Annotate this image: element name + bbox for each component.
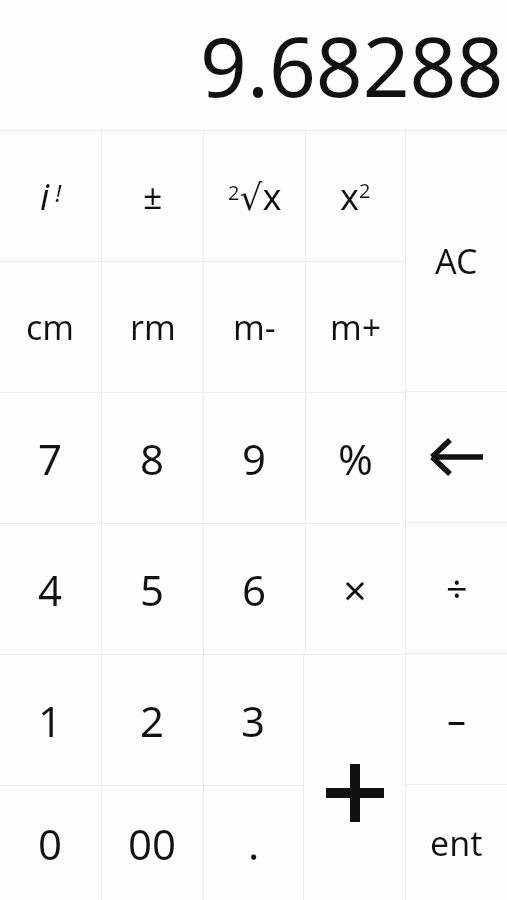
staticText: ÷ (446, 562, 468, 614)
button[interactable]: × (306, 524, 405, 654)
staticText: 2 (140, 692, 165, 749)
button[interactable]: % (306, 393, 405, 523)
button[interactable]: ent (406, 785, 507, 900)
staticText: 8 (140, 430, 165, 487)
staticText: 6 (242, 561, 267, 618)
staticText: 9 (242, 430, 267, 487)
button[interactable]: Plus (304, 655, 405, 900)
button[interactable]: m- (204, 262, 305, 392)
staticText: ± (143, 173, 163, 219)
button[interactable]: ÷ (406, 523, 507, 653)
button[interactable]: 2√x (204, 131, 305, 261)
staticText: m- (233, 304, 276, 350)
button[interactable]: 3 (204, 655, 303, 785)
staticText: rm (130, 304, 176, 350)
staticText: AC (435, 238, 478, 284)
staticText: 4 (38, 561, 63, 618)
button[interactable]: 9 (204, 393, 305, 523)
staticText: x2 (340, 172, 371, 221)
staticText: . (248, 815, 260, 872)
staticText: ent (430, 820, 483, 866)
staticText: 00 (128, 815, 177, 872)
staticText: 7 (38, 430, 63, 487)
staticText: 9.68288 (200, 9, 504, 121)
staticText: – (447, 693, 467, 745)
staticText: 5 (140, 561, 165, 618)
button[interactable]: rm (102, 262, 203, 392)
button[interactable]: 00 (102, 786, 203, 900)
button[interactable]: 2 (102, 655, 203, 785)
button[interactable]: 8 (102, 393, 203, 523)
button[interactable]: i ! (0, 131, 101, 261)
staticText: 3 (241, 692, 266, 749)
button[interactable]: x2 (306, 131, 405, 261)
button[interactable]: AC (406, 131, 507, 391)
staticText: 1 (38, 692, 63, 749)
staticText: cm (26, 304, 75, 350)
button[interactable]: ± (102, 131, 203, 261)
button[interactable]: m+ (306, 262, 405, 392)
staticText: 2√x (228, 172, 282, 221)
button[interactable]: 7 (0, 393, 101, 523)
button[interactable]: . (204, 786, 303, 900)
staticText: i ! (40, 172, 62, 221)
button[interactable]: cm (0, 262, 101, 392)
button[interactable]: 0 (0, 786, 101, 900)
button[interactable]: – (406, 654, 507, 784)
staticText: 0 (38, 815, 63, 872)
staticText: % (338, 430, 373, 487)
button[interactable]: 1 (0, 655, 101, 785)
button[interactable]: 5 (102, 524, 203, 654)
button[interactable]: 4 (0, 524, 101, 654)
staticText: m+ (330, 304, 382, 350)
button[interactable]: Backspace (406, 392, 507, 522)
staticText: × (343, 561, 368, 618)
button[interactable]: 6 (204, 524, 305, 654)
